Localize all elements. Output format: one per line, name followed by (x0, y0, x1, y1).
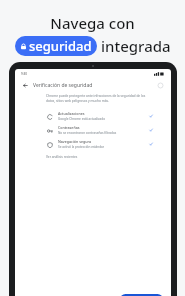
staticText: Verificación de seguridad (33, 82, 93, 89)
button[interactable]: Verificar ahora (120, 294, 163, 296)
button[interactable]: Navegación segura (46, 137, 153, 151)
button[interactable]: Contraseñas (46, 123, 153, 137)
staticText: Actualizaciones (58, 111, 85, 116)
staticText: Se activó la protección estándar (58, 145, 105, 149)
staticText: No se encontraron contraseñas filtradas (58, 131, 117, 135)
staticText: integrada (101, 36, 171, 56)
staticText: Navega con (50, 13, 135, 33)
staticText: 9:30 (21, 72, 27, 76)
button[interactable]: Account (156, 81, 165, 90)
staticText: Google Chrome está actualizado (58, 117, 106, 121)
staticText: Navegación segura (58, 139, 91, 144)
button[interactable]: Actualizaciones (46, 109, 153, 123)
button[interactable]: Back (21, 81, 30, 90)
staticText: Ver análisis recientes (46, 155, 78, 159)
staticText: Chrome puede protegerte ante infraccione… (46, 94, 153, 103)
staticText: Contraseñas (58, 125, 80, 130)
staticText: seguridad (29, 37, 92, 55)
